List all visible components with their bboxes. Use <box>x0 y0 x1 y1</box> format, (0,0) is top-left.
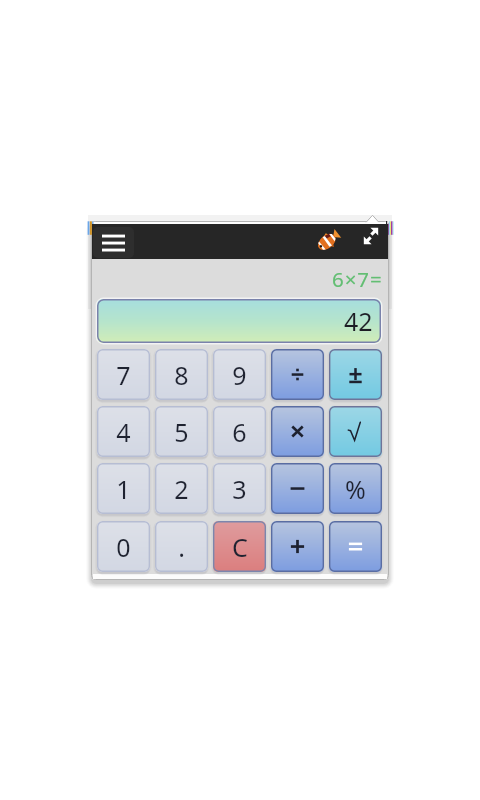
staticText: 0 <box>116 530 131 564</box>
button[interactable]: C <box>213 521 266 572</box>
staticText: 6×7= <box>332 265 383 289</box>
button[interactable]: Plus minus <box>329 349 382 400</box>
staticText: 2 <box>174 472 189 506</box>
button[interactable]: 8 <box>155 349 208 400</box>
button[interactable]: Multiply <box>271 406 324 457</box>
button[interactable]: Divide <box>271 349 324 400</box>
button[interactable]: 2 <box>155 463 208 514</box>
staticText: % <box>345 472 366 506</box>
button[interactable]: Minus <box>271 463 324 514</box>
staticText: 42 <box>344 304 373 338</box>
staticText: 6 <box>232 415 247 449</box>
staticText: 7 <box>116 358 131 392</box>
button[interactable]: 7 <box>97 349 150 400</box>
staticText: 9 <box>232 358 247 392</box>
button[interactable]: Equals <box>329 521 382 572</box>
button[interactable]: % <box>329 463 382 514</box>
staticText: 3 <box>232 472 247 506</box>
button[interactable]: Square root <box>329 406 382 457</box>
staticText: . <box>178 530 185 564</box>
button[interactable]: 9 <box>213 349 266 400</box>
button[interactable]: 3 <box>213 463 266 514</box>
staticText: 1 <box>116 472 131 506</box>
staticText: 4 <box>116 415 131 449</box>
button[interactable]: Expand <box>360 225 384 249</box>
button[interactable]: 5 <box>155 406 208 457</box>
staticText: 5 <box>174 415 189 449</box>
staticText: 8 <box>174 358 189 392</box>
button[interactable]: 0 <box>97 521 150 572</box>
staticText: C <box>232 530 248 564</box>
button[interactable]: Fish <box>315 228 341 254</box>
button[interactable]: 6 <box>213 406 266 457</box>
button[interactable]: Plus <box>271 521 324 572</box>
button[interactable]: 4 <box>97 406 150 457</box>
button[interactable]: . <box>155 521 208 572</box>
button[interactable]: 1 <box>97 463 150 514</box>
button[interactable]: Menu <box>93 227 134 258</box>
